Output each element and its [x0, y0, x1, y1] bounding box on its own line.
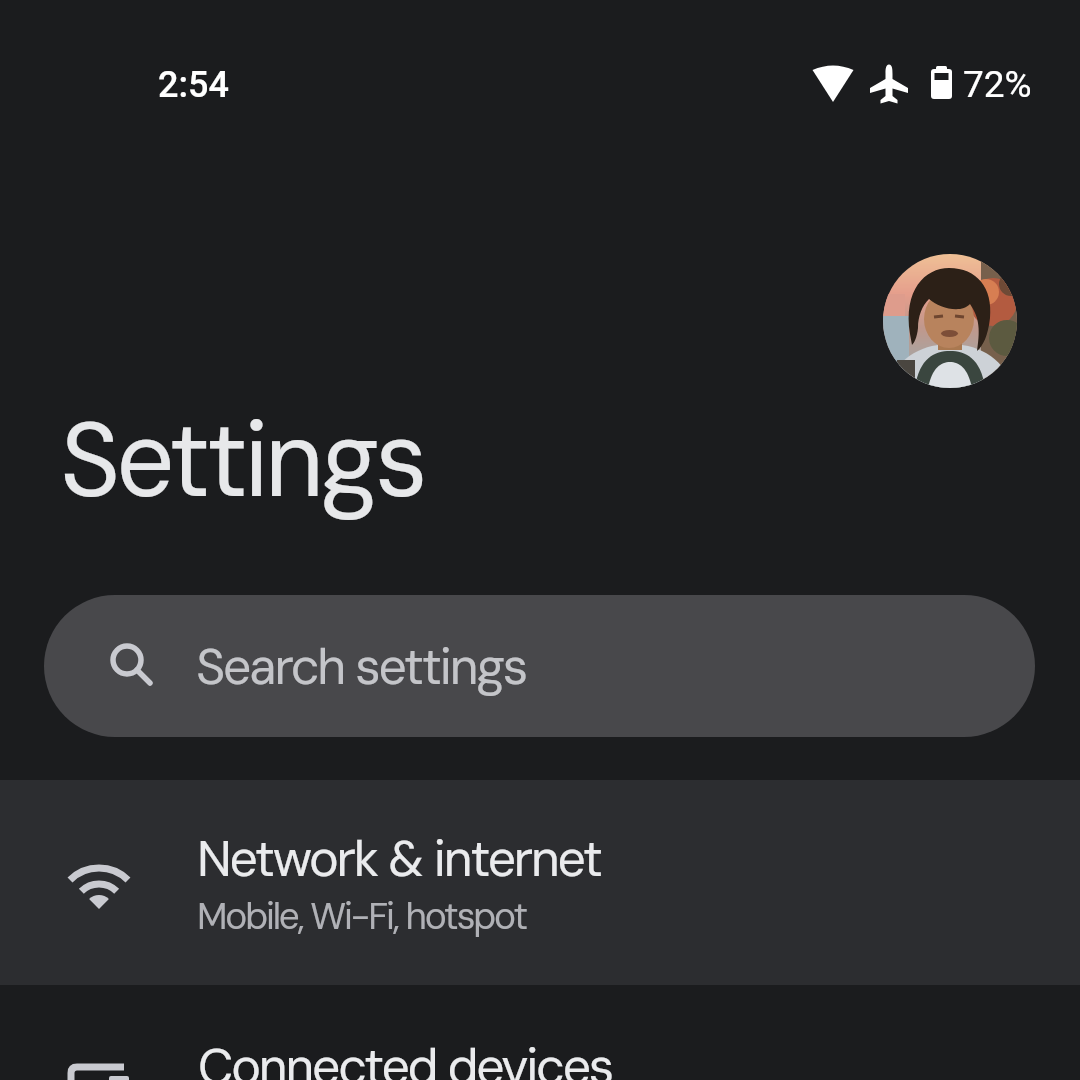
staticText: Settings	[60, 394, 424, 528]
staticText: Connected devices	[198, 1034, 612, 1080]
staticText: Mobile, Wi-Fi, hotspot	[197, 892, 526, 940]
staticText: 72%	[963, 63, 1032, 106]
button[interactable]	[883, 254, 1017, 388]
button[interactable]: Network & internet	[0, 780, 1080, 985]
staticText: 2:54	[158, 64, 229, 106]
staticText: Network & internet	[197, 826, 601, 891]
button[interactable]: Connected devices	[0, 985, 1080, 1080]
staticText: Search settings	[196, 634, 526, 699]
button[interactable]: Search settings	[44, 595, 1035, 737]
